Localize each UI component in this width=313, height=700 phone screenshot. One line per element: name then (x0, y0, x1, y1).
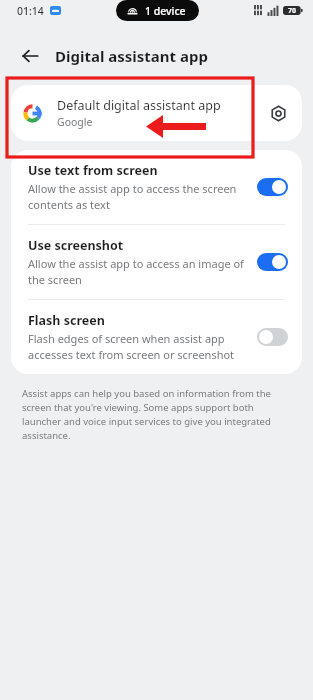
button[interactable]: On (257, 253, 288, 271)
staticText: Flash edges of screen when assist app ac… (28, 331, 247, 362)
button[interactable]: Flash screen (11, 300, 302, 374)
button[interactable]: Settings (263, 98, 293, 128)
staticText: Allow the assist app to access an image … (28, 256, 247, 287)
button[interactable]: Off (257, 328, 288, 346)
button[interactable]: Back (13, 39, 47, 73)
staticText: Flash screen (28, 312, 105, 329)
staticText: Google (57, 115, 93, 129)
button[interactable]: 1 device (116, 0, 199, 21)
button[interactable]: Use text from screen (11, 150, 302, 224)
staticText: Use text from screen (28, 162, 158, 179)
staticText: Default digital assistant app (57, 97, 221, 114)
staticText: 1 device (145, 4, 186, 18)
staticText: 70 (288, 6, 297, 16)
button[interactable]: On (257, 178, 288, 196)
staticText: Allow the assist app to access the scree… (28, 181, 247, 212)
staticText: Use screenshot (28, 237, 124, 254)
button[interactable]: Use screenshot (11, 225, 302, 299)
button[interactable]: Default digital assistant app (11, 85, 302, 141)
staticText: 01:14 (17, 4, 44, 18)
staticText: Assist apps can help you based on inform… (22, 387, 293, 442)
staticText: Digital assistant app (55, 46, 208, 66)
